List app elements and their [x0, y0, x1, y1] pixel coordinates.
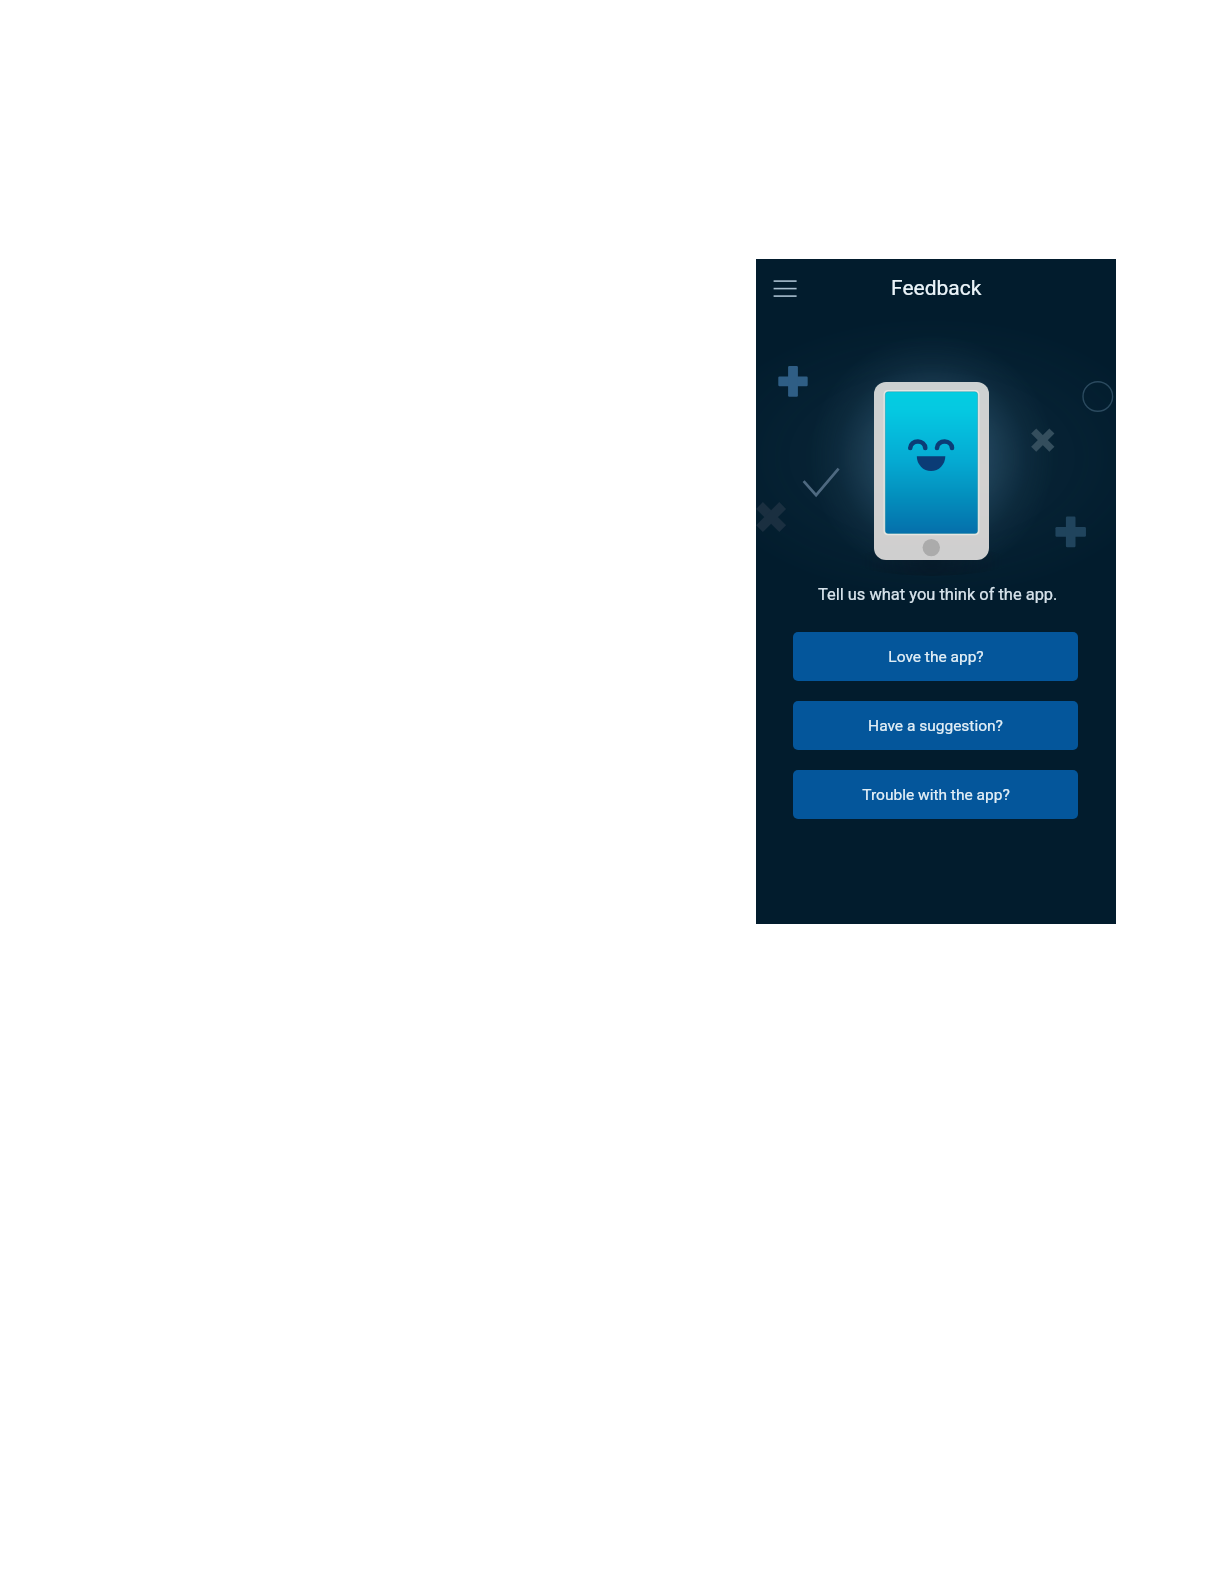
button[interactable]: Open navigation menu — [771, 277, 799, 300]
staticText: Have a suggestion? — [868, 717, 1003, 735]
button[interactable]: Trouble with the app? — [793, 770, 1078, 819]
button[interactable]: Have a suggestion? — [793, 701, 1078, 750]
staticText: Trouble with the app? — [862, 786, 1010, 804]
staticText: Tell us what you think of the app. — [818, 585, 1058, 604]
staticText: Feedback — [891, 276, 982, 301]
staticText: Love the app? — [888, 648, 984, 666]
button[interactable]: Love the app? — [793, 632, 1078, 681]
